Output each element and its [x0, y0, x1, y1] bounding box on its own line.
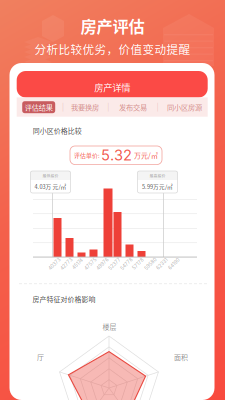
- staticText: 楼层: [102, 321, 116, 331]
- staticText: 45174: [71, 261, 84, 267]
- staticText: 面积: [174, 352, 188, 362]
- staticText: 房产评估: [80, 14, 144, 38]
- staticText: 40373: [47, 261, 62, 267]
- staticText: 万元/㎡: [134, 150, 158, 160]
- button[interactable]: 发布交易: [119, 101, 147, 113]
- staticText: 房产详情: [94, 80, 130, 94]
- staticText: 最低报价: [42, 173, 58, 178]
- staticText: 5.99万元/㎡: [142, 182, 173, 190]
- button[interactable]: 评估结果: [22, 101, 55, 113]
- staticText: |: [157, 103, 159, 112]
- staticText: 4.03万 元/㎡: [34, 182, 66, 190]
- staticText: 54778: [119, 261, 134, 267]
- staticText: 42773: [59, 261, 74, 267]
- staticText: 52377: [107, 261, 122, 267]
- staticText: 64190: [167, 261, 181, 267]
- staticText: |: [107, 103, 109, 112]
- staticText: 房产特征对价格影响: [32, 294, 95, 304]
- staticText: 同小区房源: [167, 102, 202, 112]
- staticText: 发布交易: [119, 102, 147, 112]
- button[interactable]: 同小区房源: [167, 101, 202, 113]
- staticText: 最高报价: [149, 173, 165, 178]
- staticText: 49976: [95, 261, 110, 267]
- staticText: 同小区价格比较: [33, 125, 82, 135]
- staticText: 62331: [155, 261, 169, 267]
- button[interactable]: 我要换房: [71, 101, 99, 113]
- staticText: 评估单价:: [74, 151, 100, 159]
- staticText: 47575: [83, 261, 98, 267]
- staticText: 59580: [143, 261, 158, 267]
- staticText: 评估结果: [25, 102, 53, 112]
- staticText: 57178: [131, 261, 145, 267]
- staticText: 我要换房: [71, 102, 99, 112]
- staticText: |: [62, 103, 64, 112]
- staticText: 分析比较优劣，价值变动提醒: [34, 41, 190, 57]
- staticText: 厅: [37, 352, 44, 362]
- staticText: 5.32: [101, 146, 132, 164]
